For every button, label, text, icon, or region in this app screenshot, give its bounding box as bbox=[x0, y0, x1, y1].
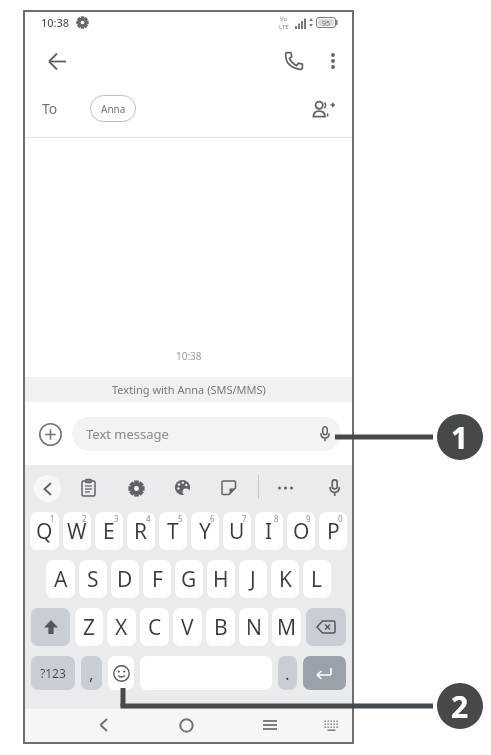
staticText: V bbox=[181, 613, 194, 642]
button[interactable] bbox=[39, 43, 75, 79]
staticText: 0 bbox=[338, 513, 343, 524]
button[interactable]: H bbox=[207, 560, 235, 598]
button[interactable] bbox=[172, 711, 200, 739]
staticText: 10:38 bbox=[176, 349, 202, 363]
staticText: 95 bbox=[322, 19, 331, 26]
button[interactable]: R bbox=[127, 512, 155, 550]
staticText: 4 bbox=[146, 513, 151, 524]
staticText: A bbox=[54, 565, 68, 594]
button[interactable]: S bbox=[79, 560, 107, 598]
staticText: D bbox=[117, 565, 133, 594]
button[interactable] bbox=[256, 711, 284, 739]
button[interactable]: F bbox=[143, 560, 171, 598]
button[interactable]: B bbox=[206, 608, 235, 646]
button[interactable] bbox=[317, 711, 345, 739]
staticText: H bbox=[213, 565, 229, 594]
staticText: I bbox=[265, 517, 273, 546]
staticText: Vo bbox=[280, 15, 288, 23]
button[interactable]: V bbox=[173, 608, 202, 646]
staticText: N bbox=[246, 613, 262, 642]
button[interactable] bbox=[306, 92, 340, 126]
staticText: J bbox=[250, 565, 256, 594]
button[interactable]: E bbox=[95, 512, 123, 550]
button[interactable]: Z bbox=[75, 608, 103, 646]
staticText: O bbox=[293, 517, 310, 546]
staticText: F bbox=[152, 565, 163, 594]
staticText: M bbox=[277, 613, 297, 642]
staticText: 5 bbox=[178, 513, 183, 524]
button[interactable]: P bbox=[319, 512, 347, 550]
staticText: R bbox=[134, 517, 148, 546]
button[interactable]: N bbox=[239, 608, 268, 646]
staticText: 2 bbox=[82, 513, 87, 524]
button[interactable]: . bbox=[278, 656, 297, 690]
button[interactable]: Anna bbox=[90, 95, 136, 122]
staticText: To bbox=[42, 99, 58, 118]
staticText: . bbox=[285, 662, 290, 685]
staticText: , bbox=[89, 662, 94, 685]
staticText: Texting with Anna (SMS/MMS) bbox=[112, 382, 266, 397]
button[interactable]: Y bbox=[191, 512, 219, 550]
staticText: K bbox=[279, 565, 292, 594]
staticText: 10:38 bbox=[41, 15, 70, 30]
staticText: B bbox=[214, 613, 228, 642]
staticText: T bbox=[167, 517, 179, 546]
button[interactable]: D bbox=[111, 560, 139, 598]
staticText: 9 bbox=[306, 513, 311, 524]
button[interactable] bbox=[316, 44, 350, 78]
button[interactable] bbox=[34, 475, 61, 502]
button[interactable]: Text message bbox=[72, 417, 341, 451]
staticText: Y bbox=[199, 517, 211, 546]
button[interactable]: T bbox=[159, 512, 187, 550]
button[interactable]: I bbox=[255, 512, 283, 550]
staticText: E bbox=[103, 517, 115, 546]
staticText: C bbox=[148, 613, 162, 642]
staticText: 7 bbox=[242, 513, 247, 524]
staticText: X bbox=[115, 613, 128, 642]
staticText: 1 bbox=[50, 513, 55, 524]
button[interactable]: L bbox=[303, 560, 331, 598]
staticText: 2 bbox=[451, 686, 469, 727]
staticText: W bbox=[67, 517, 87, 546]
button[interactable] bbox=[108, 656, 134, 690]
button[interactable] bbox=[36, 420, 64, 448]
staticText: 3 bbox=[114, 513, 119, 524]
button[interactable]: ?123 bbox=[31, 656, 75, 690]
staticText: 8 bbox=[274, 513, 279, 524]
staticText: S bbox=[87, 565, 99, 594]
button[interactable] bbox=[306, 608, 346, 646]
staticText: 6 bbox=[210, 513, 215, 524]
staticText: ?123 bbox=[40, 665, 66, 681]
staticText: U bbox=[229, 517, 245, 546]
button[interactable]: U bbox=[223, 512, 251, 550]
staticText: G bbox=[181, 565, 197, 594]
button[interactable] bbox=[31, 608, 70, 646]
button[interactable]: Q bbox=[30, 512, 59, 550]
button[interactable] bbox=[274, 41, 314, 81]
button[interactable]: K bbox=[271, 560, 299, 598]
button[interactable]: C bbox=[140, 608, 169, 646]
button[interactable] bbox=[303, 656, 346, 690]
button[interactable]: W bbox=[63, 512, 91, 550]
button[interactable]: , bbox=[81, 656, 102, 690]
button[interactable]: X bbox=[107, 608, 136, 646]
button[interactable]: M bbox=[272, 608, 301, 646]
button[interactable]: J bbox=[239, 560, 267, 598]
staticText: L bbox=[311, 565, 323, 594]
staticText: Q bbox=[36, 517, 53, 546]
button[interactable] bbox=[89, 711, 117, 739]
button[interactable]: A bbox=[46, 560, 75, 598]
staticText: LTE bbox=[279, 23, 289, 31]
staticText: Z bbox=[83, 613, 96, 642]
staticText: P bbox=[327, 517, 340, 546]
button[interactable]: G bbox=[175, 560, 203, 598]
staticText: 1 bbox=[451, 417, 469, 458]
staticText: Anna bbox=[101, 102, 126, 116]
button[interactable]: O bbox=[287, 512, 315, 550]
staticText: Text message bbox=[86, 425, 169, 443]
